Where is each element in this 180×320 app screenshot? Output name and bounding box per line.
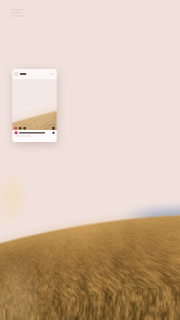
button[interactable]	[12, 69, 56, 142]
